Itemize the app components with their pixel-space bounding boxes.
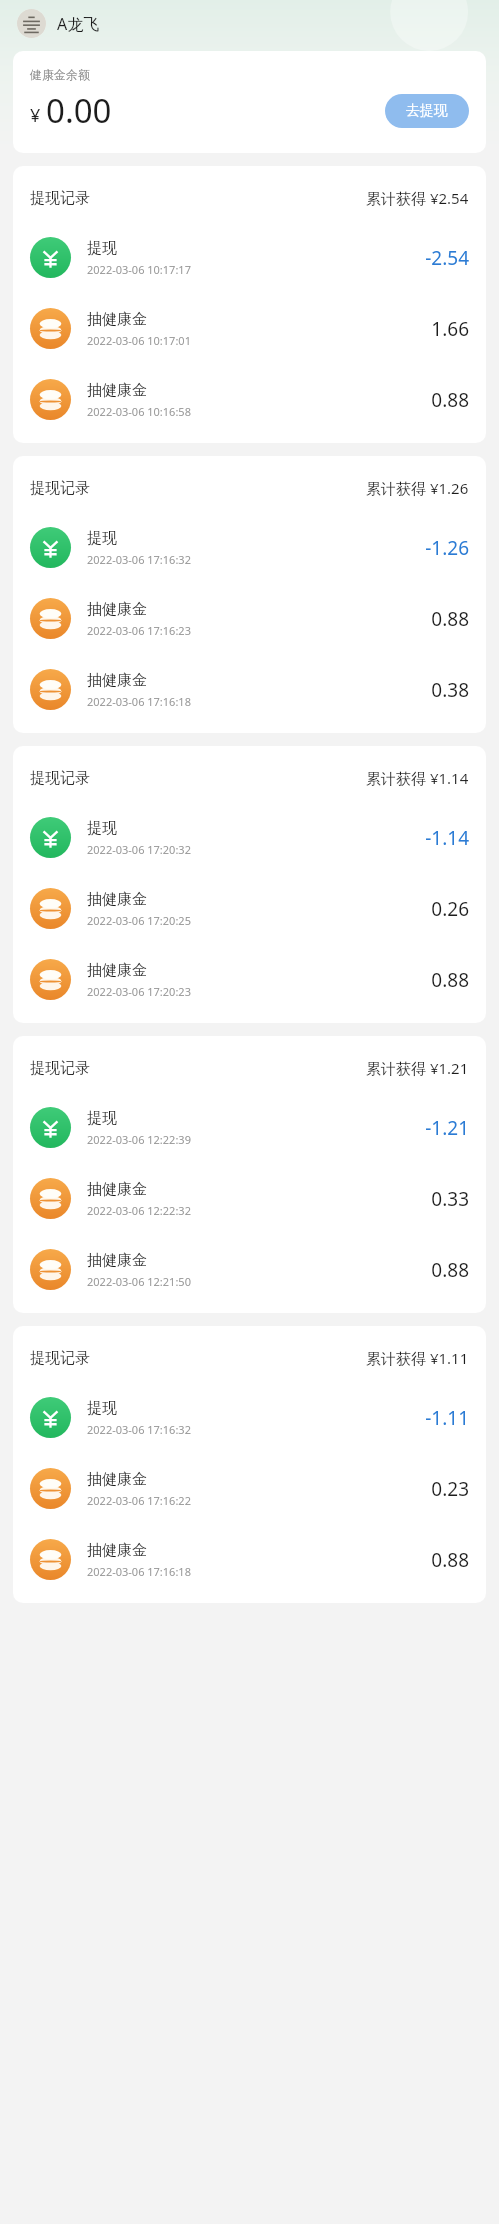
button[interactable]: 抽健康金 <box>13 1234 486 1305</box>
staticText: 抽健康金 <box>87 381 147 400</box>
staticText: A龙飞 <box>57 13 100 35</box>
staticText: 提现 <box>87 1399 117 1418</box>
staticText: 提现记录 <box>30 769 90 788</box>
staticText: 0.88 <box>431 967 469 993</box>
staticText: 提现记录 <box>30 1349 90 1368</box>
staticText: 2022-03-06 10:17:01 <box>87 333 191 348</box>
staticText: 0.00 <box>46 88 112 133</box>
staticText: 提现记录 <box>30 479 90 498</box>
staticText: 2022-03-06 10:17:17 <box>87 262 191 277</box>
staticText: 2022-03-06 17:20:25 <box>87 913 191 928</box>
staticText: 2022-03-06 12:22:39 <box>87 1132 191 1147</box>
staticText: 0.33 <box>431 1186 469 1212</box>
staticText: 0.26 <box>431 896 469 922</box>
staticText: 抽健康金 <box>87 671 147 690</box>
staticText: 抽健康金 <box>87 1541 147 1560</box>
staticText: -1.21 <box>425 1115 469 1141</box>
staticText: 抽健康金 <box>87 1470 147 1489</box>
staticText: 累计获得 ¥1.26 <box>366 478 469 498</box>
button[interactable]: 抽健康金 <box>13 654 486 725</box>
button[interactable]: Profile avatar <box>17 9 46 38</box>
button[interactable]: 抽健康金 <box>13 1524 486 1595</box>
staticText: -1.26 <box>425 535 469 561</box>
staticText: 提现记录 <box>30 1059 90 1078</box>
staticText: 抽健康金 <box>87 310 147 329</box>
staticText: 累计获得 ¥2.54 <box>366 188 469 208</box>
staticText: 提现 <box>87 529 117 548</box>
button[interactable]: 健康金余额 <box>13 51 486 153</box>
staticText: -2.54 <box>425 245 469 271</box>
staticText: 2022-03-06 10:16:58 <box>87 404 191 419</box>
staticText: 2022-03-06 17:16:18 <box>87 1564 191 1579</box>
staticText: 2022-03-06 17:20:32 <box>87 842 191 857</box>
staticText: 提现 <box>87 239 117 258</box>
staticText: 2022-03-06 17:16:22 <box>87 1493 191 1508</box>
staticText: 累计获得 ¥1.14 <box>366 768 469 788</box>
staticText: 0.88 <box>431 606 469 632</box>
button[interactable]: 抽健康金 <box>13 873 486 944</box>
staticText: 去提现 <box>406 102 448 120</box>
staticText: 2022-03-06 17:16:32 <box>87 552 191 567</box>
staticText: 1.66 <box>431 316 469 342</box>
button[interactable]: 抽健康金 <box>13 364 486 435</box>
staticText: 提现 <box>87 1109 117 1128</box>
staticText: 健康金余额 <box>30 67 90 82</box>
button[interactable]: 去提现 <box>385 94 469 128</box>
staticText: 2022-03-06 12:21:50 <box>87 1274 191 1289</box>
staticText: 抽健康金 <box>87 961 147 980</box>
staticText: 2022-03-06 17:16:23 <box>87 623 191 638</box>
button[interactable]: 提现 <box>13 1092 486 1163</box>
staticText: 0.23 <box>431 1476 469 1502</box>
staticText: 抽健康金 <box>87 600 147 619</box>
button[interactable]: 提现 <box>13 512 486 583</box>
staticText: 2022-03-06 17:16:32 <box>87 1422 191 1437</box>
staticText: 抽健康金 <box>87 1251 147 1270</box>
staticText: 抽健康金 <box>87 1180 147 1199</box>
staticText: 提现记录 <box>30 189 90 208</box>
staticText: 提现 <box>87 819 117 838</box>
staticText: 抽健康金 <box>87 890 147 909</box>
staticText: 0.88 <box>431 387 469 413</box>
staticText: -1.11 <box>425 1405 469 1431</box>
button[interactable]: 抽健康金 <box>13 1163 486 1234</box>
staticText: 2022-03-06 17:16:18 <box>87 694 191 709</box>
staticText: 0.38 <box>431 677 469 703</box>
staticText: 2022-03-06 12:22:32 <box>87 1203 191 1218</box>
button[interactable]: 抽健康金 <box>13 944 486 1015</box>
staticText: -1.14 <box>425 825 469 851</box>
staticText: 0.88 <box>431 1257 469 1283</box>
button[interactable]: 抽健康金 <box>13 293 486 364</box>
staticText: 累计获得 ¥1.11 <box>366 1348 469 1368</box>
button[interactable]: 提现 <box>13 802 486 873</box>
staticText: 0.88 <box>431 1547 469 1573</box>
staticText: 累计获得 ¥1.21 <box>366 1058 469 1078</box>
button[interactable]: 抽健康金 <box>13 1453 486 1524</box>
button[interactable]: 提现 <box>13 222 486 293</box>
button[interactable]: 抽健康金 <box>13 583 486 654</box>
button[interactable]: 提现 <box>13 1382 486 1453</box>
staticText: 2022-03-06 17:20:23 <box>87 984 191 999</box>
staticText: ¥ <box>30 103 41 128</box>
